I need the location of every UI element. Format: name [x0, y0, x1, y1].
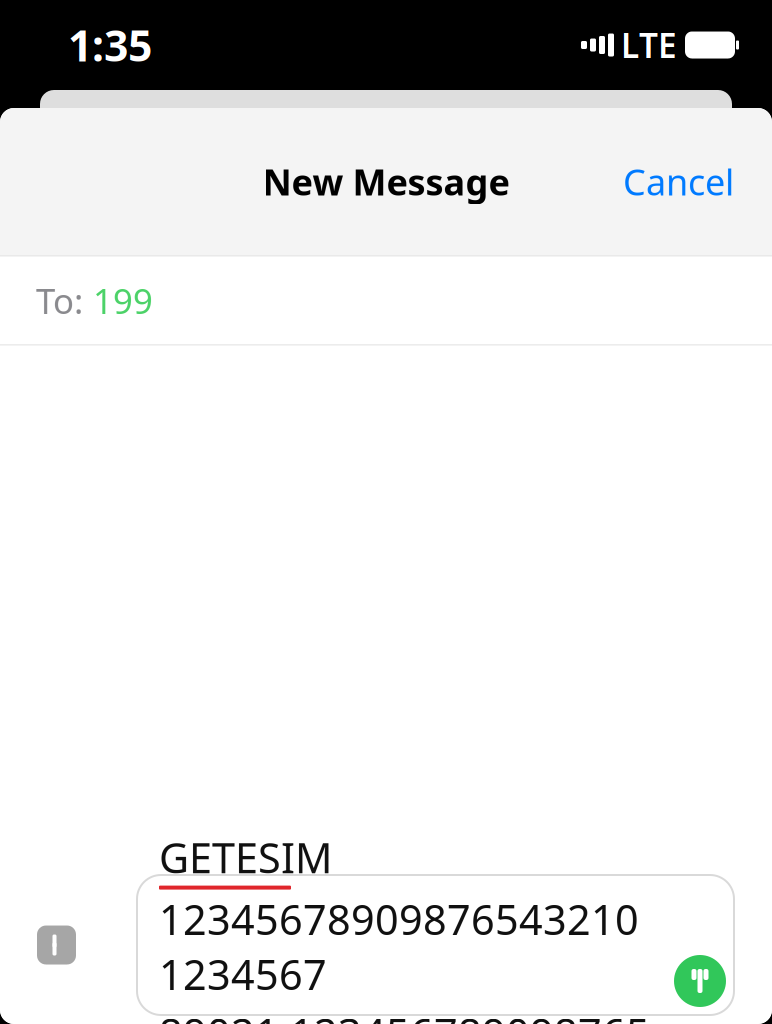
button[interactable]: Send [674, 955, 726, 1007]
staticText: 89021 123456789098765 [159, 1005, 650, 1024]
button[interactable]: Show app drawer [37, 925, 76, 964]
staticText: LTE [621, 23, 677, 67]
staticText: Cancel [623, 158, 734, 205]
staticText: New Message [262, 158, 509, 205]
staticText: 12345678909876543210 1234567 [159, 892, 639, 1001]
button[interactable]: Cancel [611, 148, 746, 215]
staticText: To: [36, 277, 83, 323]
staticText: 1:35 [68, 17, 152, 73]
button[interactable]: To: [0, 256, 772, 344]
button[interactable]: GETESIM [137, 875, 734, 1015]
staticText: 199 [93, 277, 153, 323]
staticText: GETESIM [159, 830, 332, 885]
